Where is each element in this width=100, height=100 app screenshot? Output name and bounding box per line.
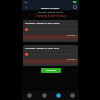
staticText: Charging Voltage in High RPM bbox=[25, 46, 59, 49]
staticText: 9:41 bbox=[24, 1, 29, 4]
staticText: Charging System Failure bbox=[35, 14, 67, 18]
button[interactable]: Charging Voltage in Idle Speed bbox=[23, 20, 78, 42]
button[interactable]: Back bbox=[22, 4, 30, 10]
staticText: Charging Voltage in Idle Speed bbox=[25, 21, 60, 24]
button[interactable]: Me bbox=[65, 91, 79, 100]
staticText: Test Time : 2020-03-16 07:44 bbox=[38, 11, 64, 14]
button[interactable]: Report bbox=[51, 91, 65, 100]
staticText: Standard bbox=[67, 58, 76, 61]
button[interactable]: Diagnose bbox=[37, 91, 51, 100]
staticText: Standard bbox=[67, 34, 76, 37]
staticText: Battery Monitor bbox=[41, 6, 60, 9]
button[interactable]: Charging Voltage in High RPM bbox=[23, 45, 78, 66]
button[interactable]: Home bbox=[22, 91, 37, 100]
button[interactable]: Test Again bbox=[41, 68, 61, 73]
staticText: Test Again bbox=[46, 69, 56, 72]
button[interactable]: Help bbox=[71, 4, 79, 10]
